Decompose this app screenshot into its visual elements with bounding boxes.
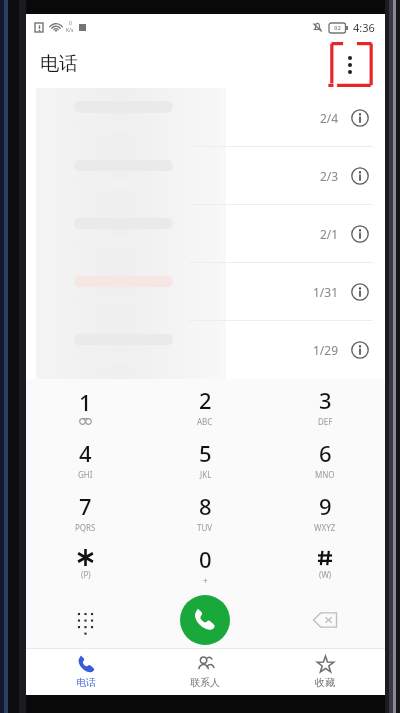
staticText: GHI: [78, 469, 93, 480]
button[interactable]: Delete: [265, 591, 385, 649]
staticText: ABC: [197, 416, 213, 427]
button[interactable]: 5: [145, 432, 265, 485]
staticText: 0: [199, 544, 212, 574]
button[interactable]: Call details: [351, 341, 369, 359]
staticText: 5: [199, 438, 212, 468]
staticText: 联系人: [190, 676, 220, 689]
staticText: 92: [334, 24, 341, 32]
button[interactable]: 电话: [26, 649, 145, 695]
button[interactable]: Keypad: [26, 591, 145, 649]
button[interactable]: 2/3: [26, 147, 385, 205]
button[interactable]: Call: [180, 595, 230, 645]
staticText: 6: [319, 438, 332, 468]
staticText: (W): [319, 569, 332, 580]
button[interactable]: 3: [265, 379, 385, 432]
staticText: K/s: [66, 27, 74, 34]
button[interactable]: 联系人: [145, 649, 265, 695]
button[interactable]: 4: [26, 432, 145, 485]
staticText: 1: [79, 387, 92, 417]
staticText: 9: [319, 491, 332, 521]
button[interactable]: 9: [265, 485, 385, 538]
button[interactable]: Call details: [351, 109, 369, 127]
staticText: 4: [79, 438, 92, 468]
staticText: 电话: [76, 676, 96, 689]
button[interactable]: 2/1: [26, 205, 385, 263]
button[interactable]: 2: [145, 379, 265, 432]
button[interactable]: 6: [265, 432, 385, 485]
staticText: 8: [199, 491, 212, 521]
staticText: 电话: [40, 52, 78, 76]
button[interactable]: Call details: [351, 225, 369, 243]
staticText: 2: [199, 385, 212, 415]
staticText: (P): [81, 569, 91, 580]
staticText: MNO: [315, 469, 335, 480]
button[interactable]: 1/31: [26, 263, 385, 321]
staticText: 1/31: [313, 284, 339, 300]
staticText: DEF: [318, 416, 333, 427]
staticText: 1/29: [313, 342, 339, 358]
staticText: 2/1: [320, 226, 339, 242]
staticText: JKL: [200, 469, 212, 480]
button[interactable]: 2/4: [26, 88, 385, 147]
button[interactable]: 0: [145, 538, 265, 591]
staticText: 2/4: [320, 110, 339, 126]
staticText: PQRS: [75, 522, 96, 533]
staticText: TUV: [197, 522, 213, 533]
button[interactable]: 7: [26, 485, 145, 538]
button[interactable]: More options: [327, 42, 373, 87]
staticText: 4:36: [353, 20, 375, 35]
button[interactable]: 8: [145, 485, 265, 538]
button[interactable]: 1/29: [26, 321, 385, 379]
staticText: 2/3: [320, 168, 339, 184]
staticText: 0: [69, 20, 72, 27]
staticText: WXYZ: [314, 522, 336, 533]
staticText: 收藏: [315, 676, 335, 689]
button[interactable]: 1: [26, 379, 145, 432]
staticText: 7: [79, 491, 92, 521]
button[interactable]: (W): [265, 538, 385, 591]
button[interactable]: Call details: [351, 167, 369, 185]
button[interactable]: Call details: [351, 283, 369, 301]
button[interactable]: (P): [26, 538, 145, 591]
button[interactable]: 收藏: [265, 649, 385, 695]
staticText: 3: [319, 385, 332, 415]
staticText: +: [203, 575, 208, 586]
